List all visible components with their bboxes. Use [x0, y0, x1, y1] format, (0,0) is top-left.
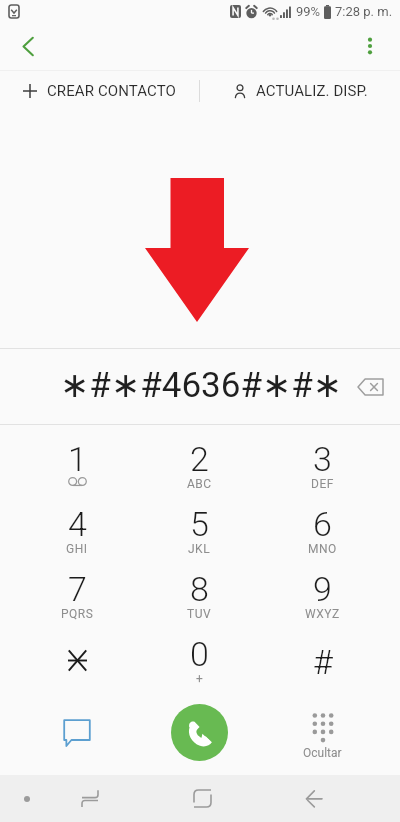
staticText: Ocultar [303, 746, 342, 760]
button[interactable]: Back [290, 775, 338, 822]
staticText: CREAR CONTACTO [47, 82, 176, 100]
button[interactable]: 1 [16, 425, 138, 490]
staticText: ACTUALIZ. DISP. [256, 82, 368, 100]
staticText: TUV [187, 607, 212, 621]
button[interactable]: 8 [138, 555, 261, 620]
button[interactable]: 0 [138, 620, 261, 685]
button[interactable]: Back [4, 22, 52, 70]
button[interactable]: # [261, 620, 384, 685]
button[interactable]: More options [346, 22, 394, 70]
button[interactable]: Call [171, 704, 228, 761]
button[interactable]: 7 [16, 555, 138, 620]
button[interactable]: Navigation handle [10, 782, 44, 816]
staticText: 3 [313, 439, 332, 479]
staticText: PQRS [61, 607, 94, 621]
button[interactable]: Hide keypad [261, 690, 384, 775]
staticText: ABC [187, 477, 212, 491]
staticText: GHI [66, 542, 88, 556]
staticText: + [196, 672, 204, 686]
staticText: ∗#∗#4636#∗#∗ [60, 365, 343, 406]
button[interactable]: 4 [16, 490, 138, 555]
staticText: 1 [68, 439, 87, 479]
staticText: 0 [190, 634, 209, 674]
button[interactable]: 9 [261, 555, 384, 620]
button[interactable]: Home [178, 775, 226, 822]
button[interactable]: 3 [261, 425, 384, 490]
staticText: # [313, 642, 333, 682]
button[interactable]: ACTUALIZ. DISP. [200, 69, 400, 113]
staticText: 7 [68, 569, 87, 609]
button[interactable]: CREAR CONTACTO [0, 69, 199, 113]
staticText: 99% [296, 4, 321, 19]
staticText: 8 [190, 569, 209, 609]
staticText: 4 [68, 504, 87, 544]
staticText: MNO [308, 542, 337, 556]
button[interactable]: 6 [261, 490, 384, 555]
button[interactable]: Backspace [346, 363, 394, 411]
staticText: DEF [311, 477, 334, 491]
button[interactable]: 5 [138, 490, 261, 555]
staticText: JKL [188, 542, 211, 556]
staticText: 2 [190, 439, 209, 479]
staticText: 5 [190, 504, 209, 544]
staticText: WXYZ [305, 607, 340, 621]
button[interactable]: 2 [138, 425, 261, 490]
staticText: 7:28 p. m. [335, 4, 393, 19]
staticText: 6 [313, 504, 332, 544]
button[interactable] [16, 620, 138, 685]
button[interactable]: Message [16, 690, 138, 775]
staticText: 9 [313, 569, 332, 609]
button[interactable]: Recent apps [66, 775, 114, 822]
